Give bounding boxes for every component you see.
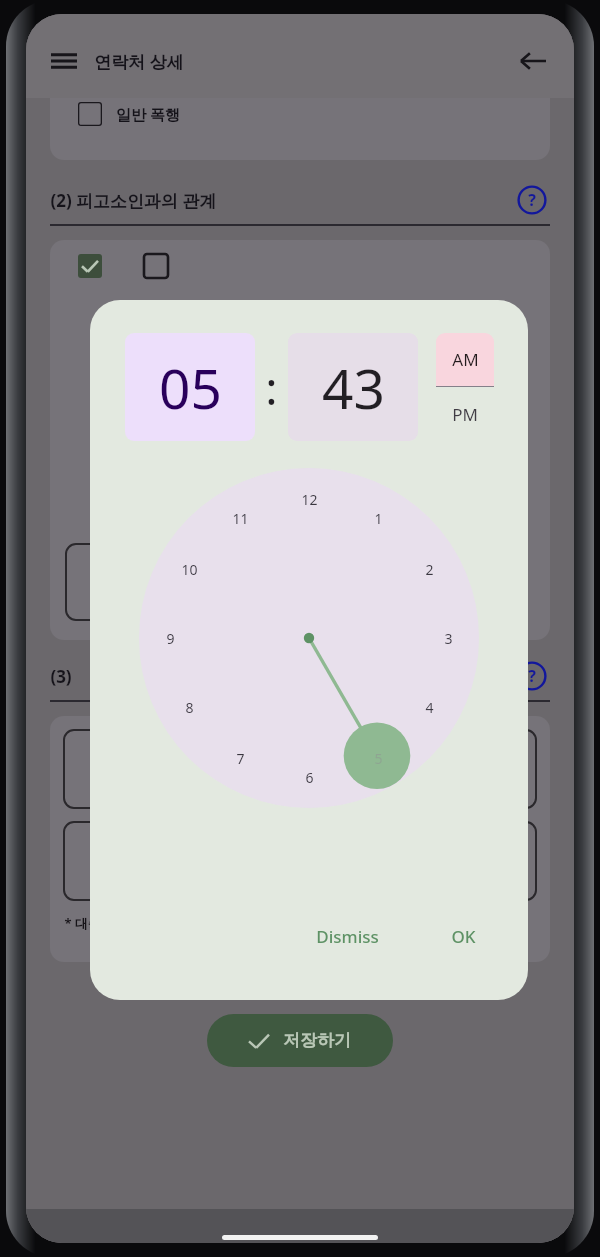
- staticText: 연락처 상세: [94, 50, 184, 73]
- staticText: 일반 폭행: [116, 104, 180, 124]
- staticText: (3): [50, 665, 72, 688]
- button[interactable]: OK: [439, 917, 488, 956]
- staticText: PM: [452, 403, 478, 426]
- staticText: 43: [322, 350, 385, 425]
- staticText: 05: [159, 350, 222, 425]
- staticText: Dismiss: [316, 925, 379, 948]
- staticText: :: [265, 356, 278, 419]
- staticText: AM: [452, 348, 479, 371]
- staticText: 1: [374, 509, 383, 528]
- button[interactable]: Dismiss: [304, 917, 391, 956]
- button[interactable]: Help: [514, 658, 550, 694]
- button[interactable]: Menu: [44, 41, 84, 81]
- button[interactable]: 05: [125, 333, 255, 441]
- button[interactable]: 43: [288, 333, 418, 441]
- button[interactable]: PM: [436, 387, 494, 441]
- staticText: 저장하기: [283, 1030, 351, 1051]
- staticText: 12: [301, 490, 318, 509]
- staticText: 5: [374, 749, 383, 768]
- staticText: * 대충 적어도 됩니다(예 : 정오경, 저녁시간, 새벽녘: [64, 914, 358, 932]
- button[interactable]: Help: [514, 182, 550, 218]
- button[interactable]: 저장하기: [207, 1014, 393, 1067]
- staticText: ?: [528, 189, 536, 211]
- staticText: 4: [425, 698, 434, 717]
- staticText: 11: [232, 509, 249, 528]
- staticText: 9: [166, 629, 175, 648]
- button[interactable]: Back: [512, 40, 554, 82]
- staticText: 7: [236, 749, 245, 768]
- button[interactable]: [139, 468, 479, 808]
- staticText: (2) 피고소인과의 관계: [50, 189, 217, 212]
- staticText: 6: [305, 768, 314, 787]
- staticText: 8: [185, 698, 194, 717]
- staticText: 10: [181, 560, 198, 579]
- staticText: OK: [451, 925, 476, 948]
- button[interactable]: AM: [436, 333, 494, 386]
- staticText: ?: [528, 665, 536, 687]
- staticText: 2: [425, 560, 434, 579]
- staticText: 3: [444, 629, 453, 648]
